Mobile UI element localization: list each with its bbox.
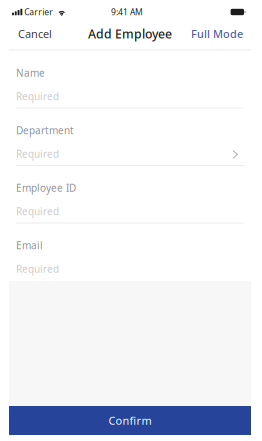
staticText: Cancel <box>18 26 52 41</box>
staticText: Department <box>16 123 74 137</box>
staticText: 9:41 AM <box>111 6 143 18</box>
staticText: Required <box>16 90 59 103</box>
staticText: Name <box>16 66 45 80</box>
staticText: Add Employee <box>88 25 172 42</box>
staticText: Full Mode <box>191 26 243 41</box>
staticText: Required <box>16 205 59 218</box>
button[interactable]: Full Mode <box>183 18 251 49</box>
staticText: Confirm <box>108 413 151 428</box>
staticText: Required <box>16 262 59 276</box>
button[interactable]: Confirm <box>9 406 251 435</box>
staticText: Carrier <box>24 6 53 18</box>
staticText: Email <box>16 238 43 252</box>
button[interactable]: Cancel <box>9 18 61 49</box>
staticText: Required <box>16 147 59 161</box>
staticText: Employee ID <box>16 181 76 195</box>
